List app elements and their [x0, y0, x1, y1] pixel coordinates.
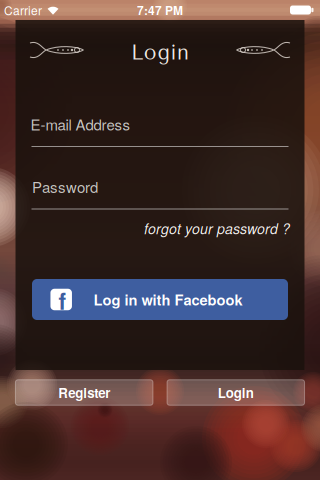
staticText: 7:47 PM	[137, 1, 183, 19]
button[interactable]: f	[32, 279, 288, 320]
staticText: f	[59, 284, 67, 317]
staticText: Register	[58, 383, 110, 402]
staticText: Password	[32, 176, 98, 197]
staticText: Carrier	[4, 1, 42, 19]
button[interactable]: forgot your password ?	[144, 218, 290, 238]
button[interactable]: Login	[167, 380, 305, 405]
staticText: Login	[131, 40, 189, 65]
button[interactable]: Password	[31, 169, 288, 214]
staticText: forgot your password ?	[144, 218, 290, 238]
staticText: Login	[218, 383, 254, 402]
staticText: E-mail Address	[30, 113, 130, 135]
staticText: Log in with Facebook	[93, 289, 242, 310]
button[interactable]: Register	[15, 380, 153, 405]
button[interactable]: E-mail Address	[31, 106, 288, 151]
